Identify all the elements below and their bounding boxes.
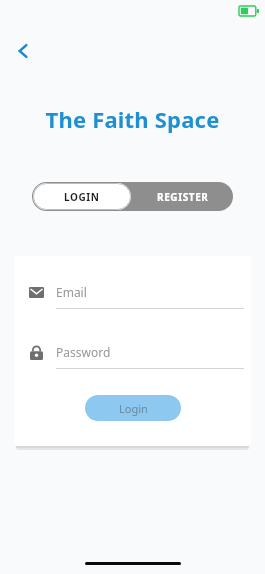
- button[interactable]: Login: [85, 395, 181, 421]
- staticText: REGISTER: [157, 190, 209, 204]
- staticText: Email: [56, 284, 87, 300]
- button[interactable]: LOGIN: [33, 183, 131, 210]
- button[interactable]: Email: [26, 282, 244, 309]
- staticText: Login: [119, 401, 148, 416]
- button[interactable]: Password: [26, 342, 244, 369]
- staticText: LOGIN: [64, 190, 100, 204]
- button[interactable]: Back: [8, 36, 38, 66]
- button[interactable]: REGISTER: [132, 182, 233, 211]
- staticText: The Faith Space: [0, 104, 265, 134]
- staticText: Password: [56, 344, 111, 360]
